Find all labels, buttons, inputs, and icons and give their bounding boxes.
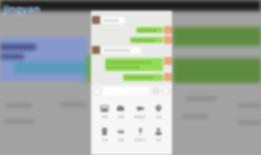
staticText: 转账 (118, 138, 124, 142)
button[interactable]: 位置 (155, 105, 162, 119)
button[interactable]: 转账 (117, 128, 124, 142)
button[interactable] (136, 27, 163, 33)
button[interactable] (130, 37, 163, 43)
button[interactable]: Avatar (164, 36, 172, 44)
button[interactable]: Avatar (92, 46, 100, 54)
staticText: 位置 (156, 115, 162, 119)
staticText: 语音输入 (134, 138, 146, 142)
button[interactable]: 相册 (101, 105, 108, 119)
button[interactable]: Emoji (152, 87, 160, 95)
button[interactable] (102, 17, 125, 24)
button[interactable] (105, 58, 163, 71)
button[interactable]: Avatar (92, 16, 100, 24)
staticText: 视频通话 (134, 115, 146, 119)
staticText: jingyan (3, 2, 40, 16)
button[interactable] (102, 47, 141, 54)
button[interactable]: 语音输入 (134, 128, 146, 142)
staticText: 相册 (102, 115, 108, 119)
button[interactable]: Avatar (164, 73, 172, 81)
staticText: 拍摄 (118, 115, 124, 119)
button[interactable]: 视频通话 (134, 105, 146, 119)
staticText: 名片 (156, 138, 162, 142)
button[interactable]: 名片 (155, 128, 162, 142)
button[interactable] (123, 74, 163, 81)
button[interactable]: Avatar (164, 57, 172, 65)
button[interactable]: 拍摄 (117, 105, 124, 119)
staticText: 红包 (102, 138, 108, 142)
button[interactable]: Avatar (164, 26, 172, 34)
button[interactable]: 红包 (101, 128, 108, 142)
